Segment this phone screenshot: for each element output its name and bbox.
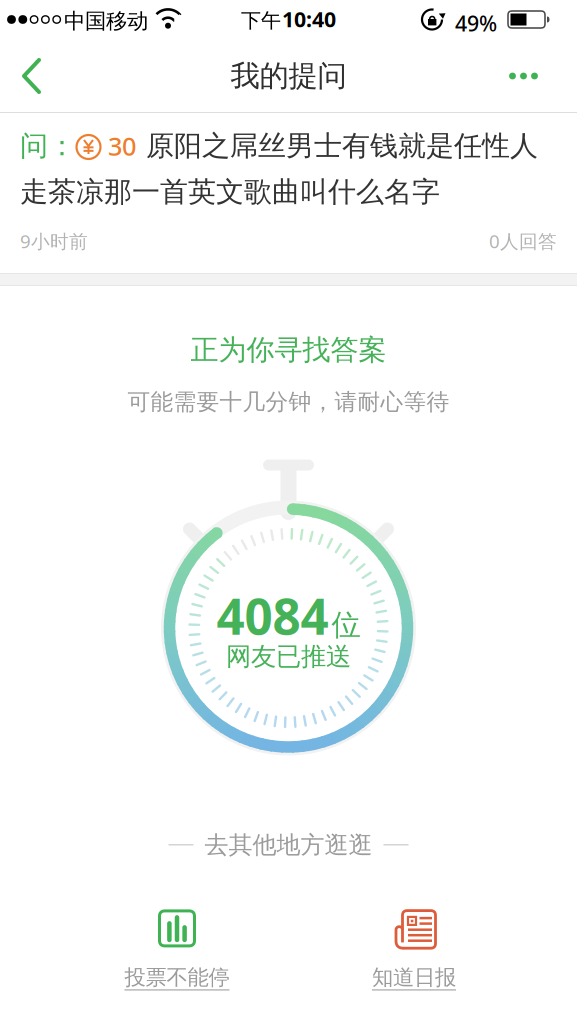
staticText: 去其他地方逛逛 [204, 830, 372, 860]
staticText: 知道日报 [372, 964, 456, 991]
staticText: 4084 [216, 583, 328, 648]
staticText: 位 [331, 607, 360, 643]
staticText: 投票不能停 [124, 964, 229, 991]
staticText: 原阳之屌丝男士有钱就是任性人 [146, 129, 538, 163]
staticText: 走茶凉那一首英文歌曲叫什么名字 [20, 175, 440, 209]
staticText: 网友已推送 [226, 641, 351, 672]
button[interactable]: 问： [0, 113, 577, 254]
staticText: 正为你寻找答案 [190, 333, 386, 367]
staticText: 10:40 [282, 5, 336, 33]
button[interactable]: Back [0, 40, 60, 112]
staticText: 下午 [241, 8, 281, 33]
staticText: 49% [455, 9, 497, 37]
button[interactable]: More [0, 40, 577, 112]
staticText: 9小时前 [20, 229, 88, 253]
staticText: 30 [108, 129, 136, 163]
staticText: 0人回答 [489, 229, 557, 253]
button[interactable]: 投票不能停 [117, 909, 237, 991]
staticText: 问： [20, 129, 76, 163]
button[interactable]: 知道日报 [354, 909, 474, 991]
staticText: 可能需要十几分钟，请耐心等待 [127, 388, 449, 416]
staticText: 中国移动 [64, 8, 148, 34]
staticText: 我的提问 [230, 58, 346, 94]
